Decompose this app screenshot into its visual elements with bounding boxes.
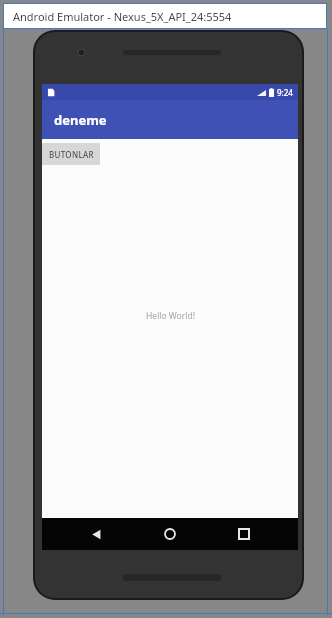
staticText: deneme (54, 111, 107, 129)
staticText: Hello World! (146, 310, 195, 322)
button[interactable]: Home (150, 518, 190, 550)
button[interactable]: Back (76, 518, 116, 550)
button[interactable]: Android Emulator - Nexus_5X_API_24:5554 (4, 4, 326, 28)
staticText: 9:24 (277, 87, 293, 98)
staticText: BUTONLAR (49, 149, 94, 160)
button[interactable]: Recent apps (224, 518, 264, 550)
button[interactable]: BUTONLAR (42, 143, 100, 165)
staticText: Android Emulator - Nexus_5X_API_24:5554 (13, 9, 232, 24)
